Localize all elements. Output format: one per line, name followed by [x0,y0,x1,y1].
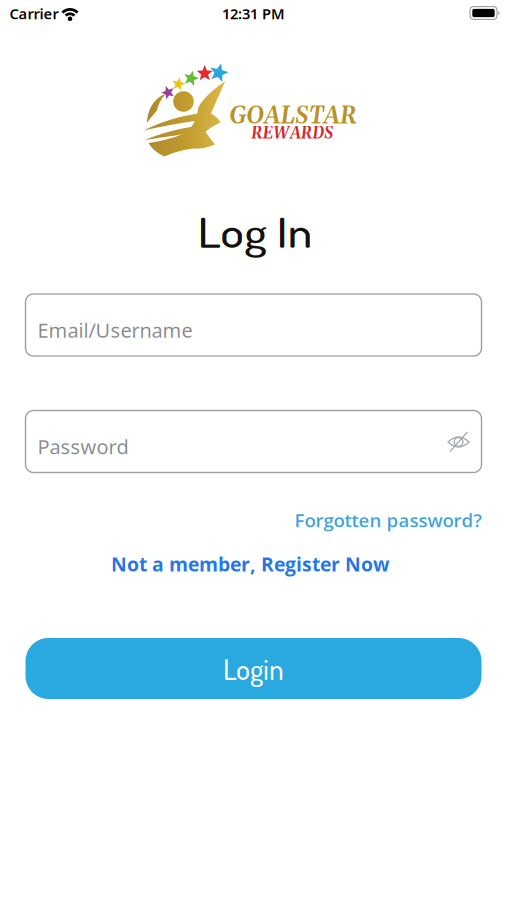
staticText: Carrier [9,4,58,23]
button[interactable]: Login [25,638,481,699]
staticText: Not a member, Register Now [111,551,390,577]
button[interactable]: Forgotten password? [294,507,481,533]
staticText: 12:31 PM [222,4,285,23]
staticText: GOALSTAR [218,100,368,132]
staticText: Log In [207,205,303,258]
button[interactable]: Show password [445,428,471,454]
staticText: Email/Username [37,317,192,343]
button[interactable]: Not a member, Register Now [111,551,390,577]
staticText: Forgotten password? [294,507,481,533]
staticText: Login [223,650,284,687]
staticText: Password [37,433,128,460]
staticText: REWARDS [242,122,341,144]
